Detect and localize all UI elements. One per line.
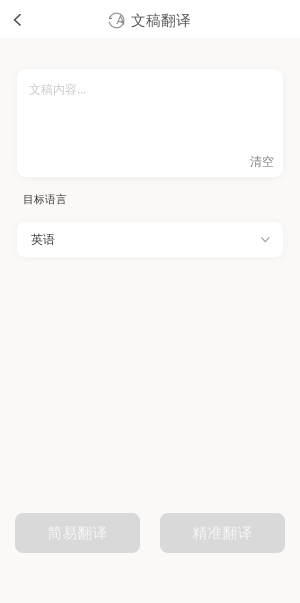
staticText: 英语 bbox=[31, 232, 55, 247]
staticText: 精准翻译 bbox=[192, 524, 252, 542]
staticText: 简易翻译 bbox=[47, 524, 107, 542]
staticText: 文稿翻译 bbox=[131, 11, 191, 29]
button[interactable]: 清空 bbox=[246, 151, 278, 172]
staticText: 文稿内容... bbox=[29, 81, 86, 97]
button[interactable]: 简易翻译 bbox=[15, 513, 140, 553]
button[interactable]: 精准翻译 bbox=[160, 513, 285, 553]
staticText: 目标语言 bbox=[23, 193, 67, 206]
button[interactable]: 英语 bbox=[17, 222, 283, 257]
staticText: 清空 bbox=[250, 154, 274, 169]
button[interactable]: Back bbox=[0, 0, 34, 38]
